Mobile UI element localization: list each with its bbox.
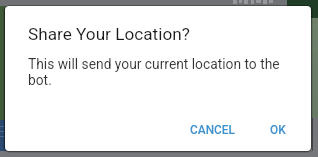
- button[interactable]: OK: [262, 115, 294, 145]
- staticText: CANCEL: [190, 123, 235, 137]
- staticText: Share Your Location?: [28, 24, 190, 44]
- staticText: This will send your current location to …: [28, 56, 287, 89]
- staticText: OK: [270, 123, 286, 137]
- button[interactable]: CANCEL: [182, 115, 243, 145]
